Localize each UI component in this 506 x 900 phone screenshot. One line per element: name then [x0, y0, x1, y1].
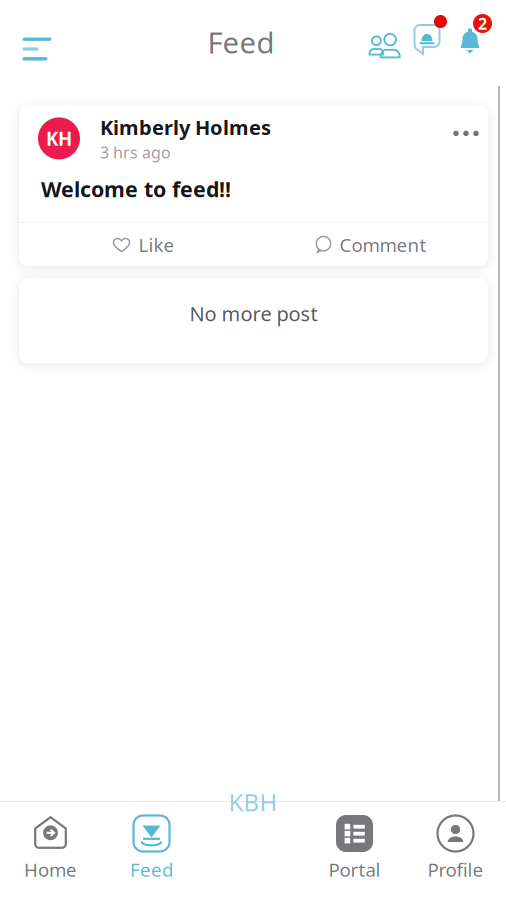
staticText: 2 [478, 13, 487, 34]
staticText: Comment [339, 232, 426, 257]
button[interactable]: Comment [253, 223, 487, 266]
staticText: Home [24, 857, 77, 882]
button[interactable]: Notifications [450, 14, 496, 62]
staticText: Portal [328, 857, 380, 882]
button[interactable]: Profile [405, 802, 506, 900]
staticText: KBH [228, 786, 277, 818]
button[interactable]: More options [445, 115, 487, 151]
staticText: 3 hrs ago [100, 142, 171, 163]
button[interactable]: Messages [407, 15, 451, 63]
button[interactable]: People [362, 24, 408, 68]
button[interactable]: Feed [101, 802, 202, 900]
staticText: Feed [130, 857, 173, 882]
staticText: Kimberly Holmes [100, 114, 271, 141]
button[interactable]: Home [0, 802, 101, 900]
staticText: Like [138, 232, 174, 257]
staticText: No more post [189, 300, 317, 327]
button[interactable]: Portal [304, 802, 405, 900]
staticText: Feed [207, 22, 274, 61]
button[interactable]: Like [19, 223, 253, 266]
staticText: KH [46, 126, 72, 151]
staticText: Welcome to feed!! [41, 175, 231, 203]
button[interactable]: Menu [8, 24, 66, 74]
staticText: Profile [427, 857, 483, 882]
